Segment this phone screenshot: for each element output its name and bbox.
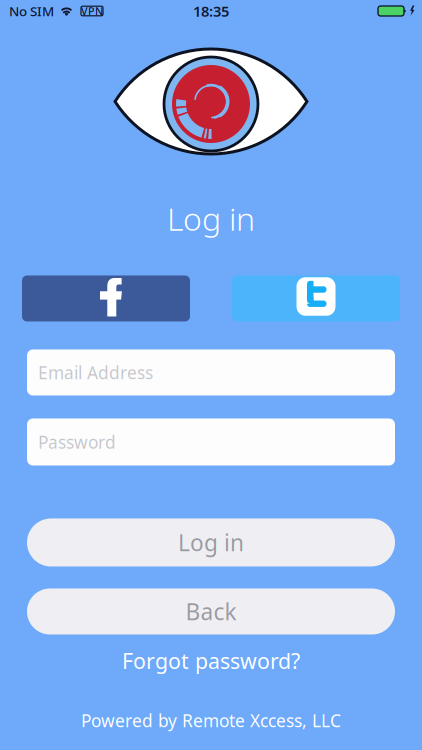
staticText: Log in <box>178 527 244 557</box>
staticText: Back <box>185 596 236 626</box>
button[interactable]: Back <box>27 588 395 634</box>
button[interactable]: Log in <box>27 518 395 566</box>
button[interactable]: Sign in with Facebook <box>22 275 190 321</box>
staticText: Forgot password? <box>122 646 300 675</box>
button[interactable]: Password <box>27 418 395 465</box>
staticText: 18:35 <box>193 1 229 21</box>
staticText: Password <box>38 430 116 453</box>
staticText: Email Address <box>38 361 153 384</box>
staticText: VPN <box>81 4 103 18</box>
staticText: Powered by Remote Xccess, LLC <box>81 709 341 732</box>
staticText: No SIM <box>9 2 54 20</box>
button[interactable]: Sign in with Twitter <box>232 275 400 321</box>
staticText: Log in <box>167 197 255 239</box>
button[interactable]: Email Address <box>27 349 395 395</box>
button[interactable]: Forgot password? <box>110 641 312 680</box>
